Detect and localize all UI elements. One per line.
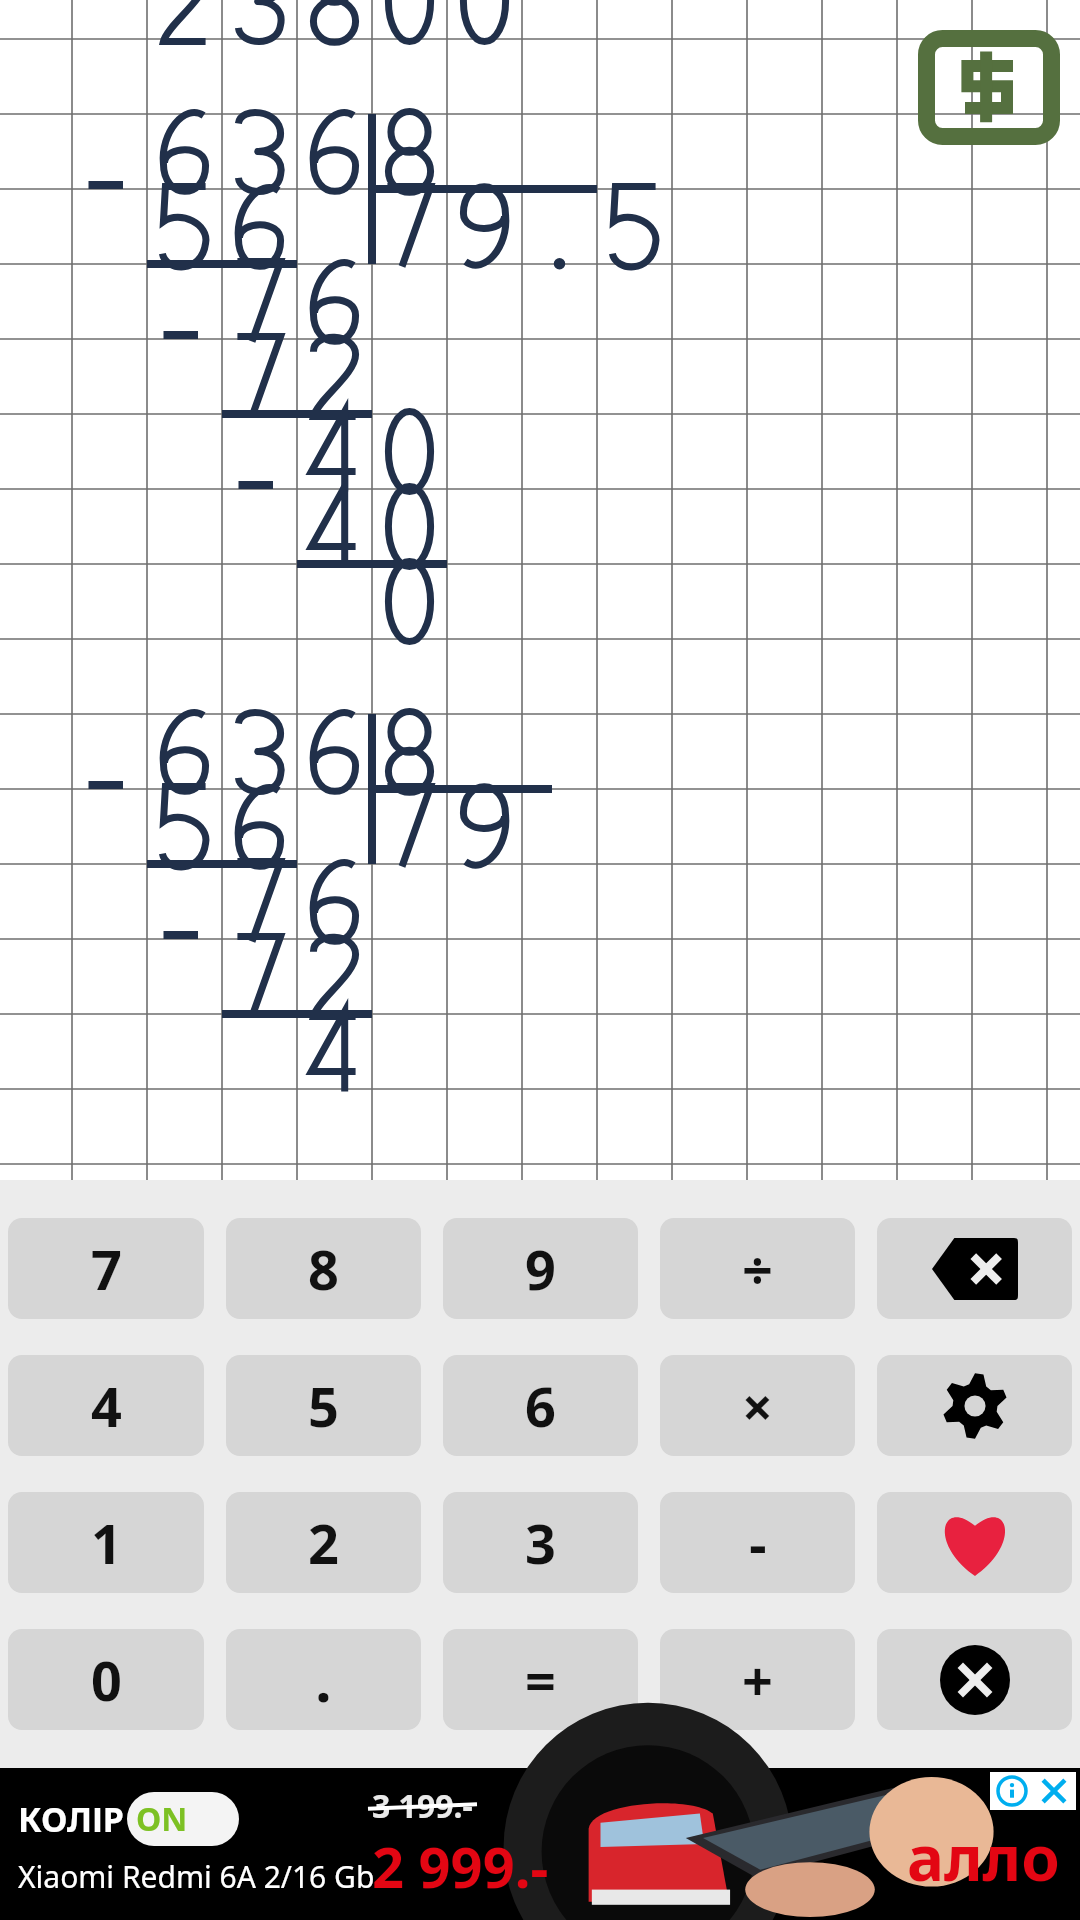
button[interactable]: 0 [8,1629,204,1730]
button[interactable]: 9 [443,1218,638,1319]
staticText: ÷ [742,1232,773,1306]
button[interactable]: - [660,1492,855,1593]
staticText: × [742,1369,773,1443]
button[interactable]: 8 [226,1218,421,1319]
staticText: 2 999.- [372,1828,549,1904]
button[interactable]: Favorite [877,1492,1072,1593]
staticText: 1 [91,1506,122,1580]
button[interactable]: . [226,1629,421,1730]
staticText: КОЛІР [18,1796,125,1842]
button[interactable]: 7 [8,1218,204,1319]
staticText: - [749,1506,767,1580]
staticText: алло [907,1815,1060,1899]
button[interactable]: 5 [226,1355,421,1456]
staticText: 6 [525,1369,556,1443]
staticText: 8 [308,1232,339,1306]
button[interactable]: Remove ads [918,30,1060,145]
staticText: Xiaomi Redmi 6A 2/16 Gb [18,1856,375,1897]
button[interactable]: Ad info [996,1775,1028,1807]
button[interactable]: + [660,1629,855,1730]
button[interactable]: Settings [877,1355,1072,1456]
staticText: + [742,1643,773,1717]
staticText: ON [136,1797,188,1841]
button[interactable]: 1 [8,1492,204,1593]
staticText: . [315,1640,332,1719]
button[interactable]: ÷ [660,1218,855,1319]
staticText: = [525,1643,556,1717]
staticText: 5 [308,1369,339,1443]
button[interactable]: 2 [226,1492,421,1593]
staticText: 2 [308,1506,339,1580]
button[interactable]: × [660,1355,855,1456]
button[interactable]: 6 [443,1355,638,1456]
button[interactable]: Backspace [877,1218,1072,1319]
button[interactable]: КОЛІР [0,1768,1080,1920]
button[interactable]: 4 [8,1355,204,1456]
staticText: 9 [525,1232,556,1306]
staticText: 3 199.- [372,1784,473,1828]
staticText: 7 [91,1232,122,1306]
staticText: 3 [525,1506,556,1580]
button[interactable]: = [443,1629,638,1730]
button[interactable]: Clear [877,1629,1072,1730]
button[interactable]: 3 [443,1492,638,1593]
staticText: 0 [91,1643,122,1717]
button[interactable]: Close ad [1038,1775,1070,1807]
staticText: 4 [91,1369,122,1443]
